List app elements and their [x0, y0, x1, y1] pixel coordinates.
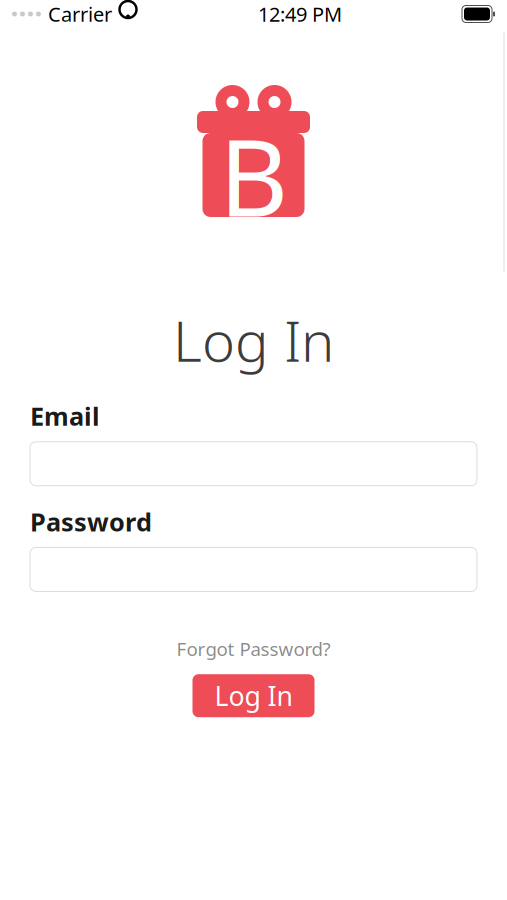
staticText: B — [219, 104, 288, 246]
button[interactable]: Log In — [192, 674, 314, 717]
staticText: 12:49 PM — [258, 1, 342, 27]
staticText: Password — [30, 505, 152, 538]
staticText: Forgot Password? — [176, 636, 330, 661]
staticText: Carrier — [48, 1, 112, 27]
staticText: Log In — [214, 678, 292, 713]
staticText: Log In — [173, 303, 334, 377]
staticText: Email — [30, 399, 100, 433]
button[interactable]: Forgot Password? — [162, 629, 344, 668]
